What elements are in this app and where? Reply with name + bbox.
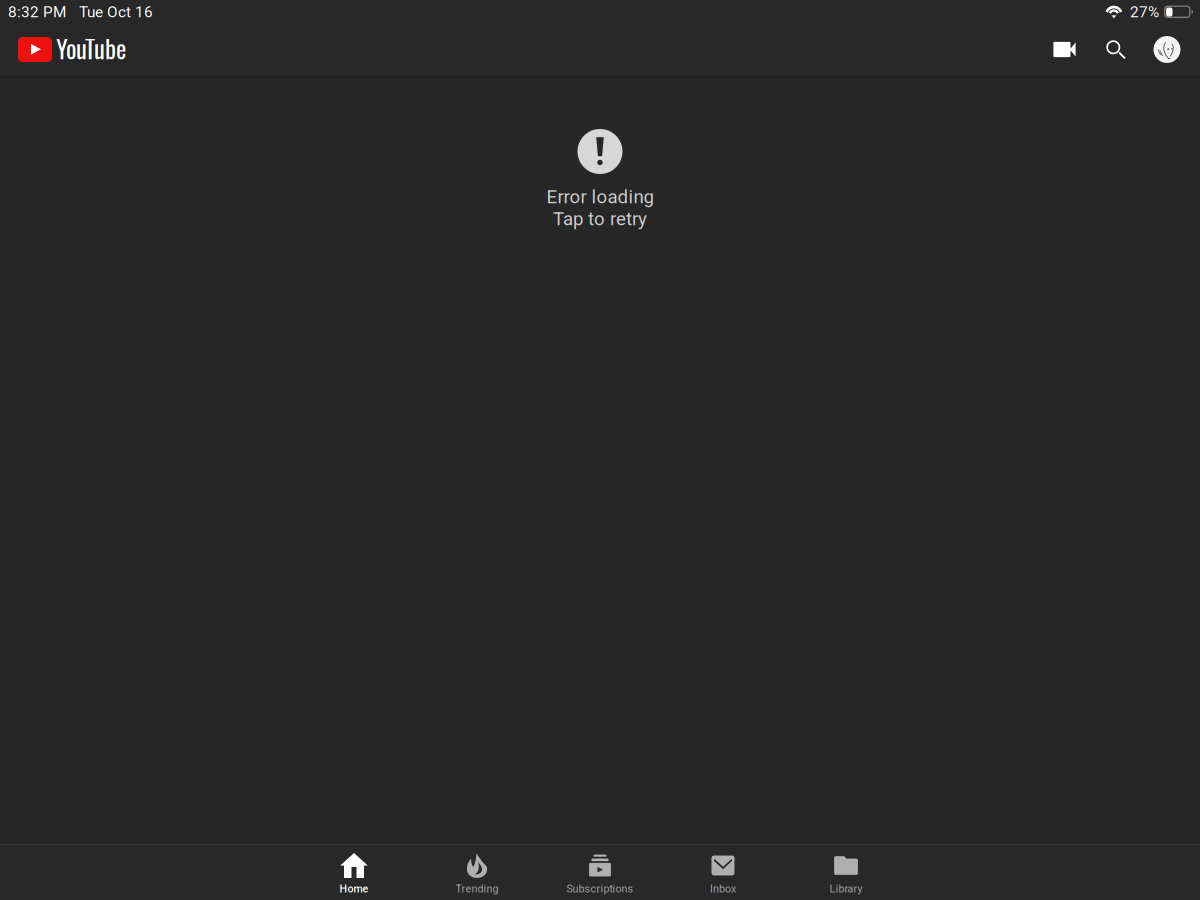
staticText: Inbox (710, 882, 736, 895)
staticText: Trending (455, 882, 498, 895)
button[interactable]: Trending (415, 845, 538, 900)
button[interactable]: Error loading (0, 78, 1200, 844)
button[interactable]: Home (292, 845, 415, 900)
staticText: Error loading (546, 186, 653, 208)
staticText: 8:32 PM (8, 3, 66, 21)
button[interactable]: Inbox (661, 845, 784, 900)
button[interactable]: Subscriptions (538, 845, 661, 900)
button[interactable]: YouTube (18, 26, 126, 72)
button[interactable]: Create (1038, 26, 1087, 72)
staticText: Subscriptions (566, 882, 633, 895)
staticText: Library (829, 882, 862, 895)
staticText: 27% (1130, 3, 1159, 21)
button[interactable]: Library (784, 845, 907, 900)
button[interactable]: Account (1144, 26, 1190, 72)
staticText: Home (339, 882, 368, 895)
staticText: Tue Oct 16 (79, 3, 153, 21)
staticText: YouTube (56, 30, 126, 66)
staticText: Tap to retry (553, 208, 647, 230)
button[interactable]: Search (1087, 26, 1144, 72)
